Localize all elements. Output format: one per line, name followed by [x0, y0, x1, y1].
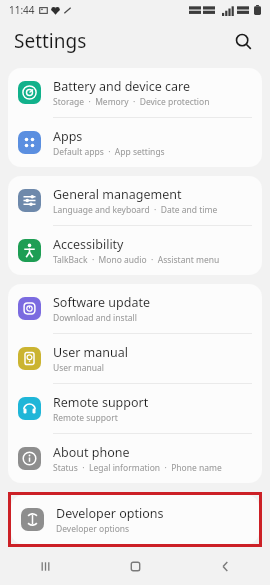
button[interactable]: Remote support [8, 384, 262, 433]
staticText: Remote support [53, 412, 118, 424]
staticText: Storage · Memory · Device protection [53, 96, 210, 108]
button[interactable]: Home [90, 547, 180, 585]
button[interactable]: Battery and device care [8, 68, 262, 117]
staticText: Software update [53, 294, 150, 311]
button[interactable]: Accessibility [8, 226, 262, 275]
button[interactable]: About phone [8, 434, 262, 483]
staticText: Default apps · App settings [53, 146, 165, 158]
staticText: Language and keyboard · Date and time [53, 204, 218, 216]
button[interactable]: User manual [8, 334, 262, 383]
staticText: User manual [53, 344, 128, 361]
button[interactable]: General management [8, 176, 262, 225]
button[interactable]: Search [228, 26, 258, 56]
staticText: 11:44 [9, 3, 35, 17]
staticText: TalkBack · Mono audio · Assistant menu [53, 254, 220, 266]
button[interactable]: Developer options [11, 495, 259, 544]
staticText: Accessibility [53, 236, 124, 253]
staticText: Battery and device care [53, 78, 191, 95]
button[interactable]: Recent apps [0, 547, 90, 585]
staticText: Status · Legal information · Phone name [53, 462, 222, 474]
staticText: Download and install [53, 312, 137, 324]
button[interactable]: Software update [8, 284, 262, 333]
staticText: Apps [53, 128, 83, 145]
staticText: Developer options [56, 505, 164, 522]
button[interactable]: Back [180, 547, 270, 585]
staticText: Settings [14, 28, 87, 54]
staticText: Developer options [56, 523, 130, 535]
staticText: General management [53, 186, 182, 203]
staticText: User manual [53, 362, 104, 374]
staticText: About phone [53, 444, 130, 461]
staticText: Remote support [53, 394, 149, 411]
button[interactable]: Apps [8, 118, 262, 167]
